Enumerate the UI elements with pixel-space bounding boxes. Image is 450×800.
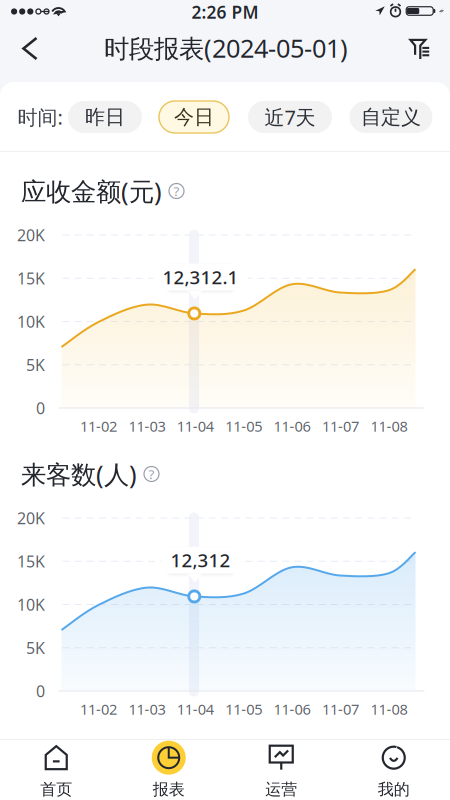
- button[interactable]: Filter: [397, 25, 443, 71]
- button[interactable]: 今日: [159, 101, 229, 133]
- button[interactable]: 我的: [337, 739, 450, 800]
- staticText: 11-04: [177, 699, 214, 719]
- staticText: 2:26 PM: [191, 0, 258, 23]
- staticText: 11-08: [370, 416, 407, 436]
- staticText: 11-06: [274, 416, 311, 436]
- button[interactable]: Back: [7, 25, 53, 71]
- staticText: 0: [36, 397, 45, 419]
- staticText: 15K: [17, 268, 45, 289]
- button[interactable]: 首页: [0, 739, 112, 800]
- staticText: 应收金额(元): [21, 174, 162, 208]
- button[interactable]: 运营: [225, 739, 337, 800]
- staticText: 昨日: [85, 105, 125, 129]
- staticText: 时段报表(2024-05-01): [104, 31, 348, 65]
- staticText: 首页: [40, 780, 72, 799]
- staticText: 5K: [26, 354, 45, 375]
- staticText: 近7天: [264, 104, 315, 130]
- button[interactable]: 报表: [112, 739, 225, 800]
- staticText: 12,312.1: [162, 265, 238, 289]
- staticText: 20K: [17, 507, 45, 529]
- staticText: 时间:: [17, 104, 62, 130]
- staticText: 今日: [174, 105, 214, 129]
- button[interactable]: 昨日: [68, 101, 142, 133]
- staticText: 11-07: [322, 699, 359, 719]
- staticText: 11-05: [225, 416, 262, 436]
- staticText: 11-08: [370, 699, 407, 719]
- staticText: 15K: [17, 551, 45, 572]
- staticText: 11-03: [128, 699, 165, 719]
- staticText: 11-04: [177, 416, 214, 436]
- staticText: 20K: [17, 224, 45, 246]
- button[interactable]: 自定义: [349, 101, 432, 133]
- staticText: 11-03: [128, 416, 165, 436]
- staticText: 11-02: [80, 699, 117, 719]
- staticText: ?: [148, 465, 154, 483]
- staticText: 我的: [378, 780, 410, 799]
- staticText: 0: [36, 680, 45, 702]
- staticText: 11-06: [274, 699, 311, 719]
- staticText: 运营: [265, 780, 297, 799]
- staticText: ?: [173, 182, 179, 200]
- staticText: 11-07: [322, 416, 359, 436]
- staticText: 报表: [153, 780, 185, 799]
- staticText: 11-05: [225, 699, 262, 719]
- staticText: 10K: [17, 594, 45, 615]
- button[interactable]: 近7天: [248, 101, 332, 133]
- staticText: 来客数(人): [21, 457, 137, 491]
- staticText: 5K: [26, 637, 45, 658]
- staticText: 自定义: [361, 105, 421, 129]
- staticText: 10K: [17, 311, 45, 332]
- staticText: 12,312: [170, 548, 230, 572]
- staticText: 11-02: [80, 416, 117, 436]
